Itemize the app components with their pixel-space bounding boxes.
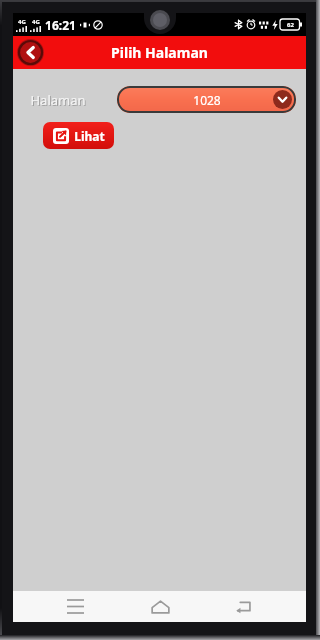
staticText: 62 bbox=[287, 21, 294, 29]
staticText: Lihat bbox=[74, 128, 105, 144]
staticText: 16:21 bbox=[45, 17, 76, 33]
button[interactable]: Back bbox=[17, 39, 44, 66]
button[interactable]: 1028 bbox=[117, 86, 296, 113]
button[interactable]: Recent apps bbox=[52, 591, 98, 622]
button[interactable]: Home bbox=[137, 591, 183, 622]
button[interactable]: Lihat bbox=[43, 122, 114, 149]
staticText: Halaman bbox=[30, 91, 86, 109]
button[interactable]: Back bbox=[221, 591, 267, 622]
staticText: 1028 bbox=[193, 92, 221, 108]
staticText: Pilih Halaman bbox=[111, 43, 208, 62]
staticText: 4G bbox=[18, 18, 26, 26]
staticText: 4G bbox=[32, 18, 40, 26]
staticText: Halaman bbox=[31, 92, 87, 110]
